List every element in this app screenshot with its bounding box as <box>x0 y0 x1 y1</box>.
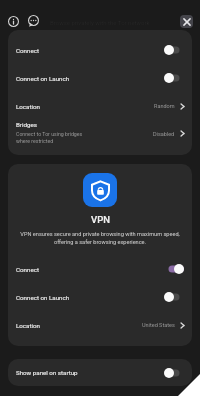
staticText: Connect on Launch <box>16 75 70 82</box>
staticText: Connect on Launch <box>16 294 70 301</box>
staticText: Location <box>16 103 154 110</box>
button[interactable]: Connect on Launch <box>8 283 192 311</box>
staticText: Connect to Tor using bridges where restr… <box>16 131 83 144</box>
staticText: VPN <box>91 214 110 225</box>
staticText: VPN ensures secure and private browsing … <box>20 231 180 246</box>
staticText: Connect <box>16 266 39 273</box>
staticText: Show panel on startup <box>16 369 78 376</box>
staticText: Bridges <box>16 121 37 128</box>
button[interactable]: Feedback <box>25 12 42 29</box>
button[interactable]: Connect <box>8 36 192 64</box>
staticText: United States <box>142 322 175 328</box>
button[interactable]: Location <box>8 311 192 339</box>
staticText: Disabled <box>153 131 175 137</box>
button[interactable]: Bridges <box>8 120 192 151</box>
button[interactable]: Connect on Launch <box>8 64 192 92</box>
button[interactable]: Connect <box>8 255 192 283</box>
button[interactable]: Show panel on startup <box>8 359 192 386</box>
staticText: Random <box>154 103 175 109</box>
button[interactable]: Location <box>8 92 192 120</box>
button[interactable]: Information <box>5 13 22 30</box>
button[interactable]: Close <box>180 15 193 28</box>
staticText: Connect <box>16 47 39 54</box>
staticText: Location <box>16 322 142 329</box>
